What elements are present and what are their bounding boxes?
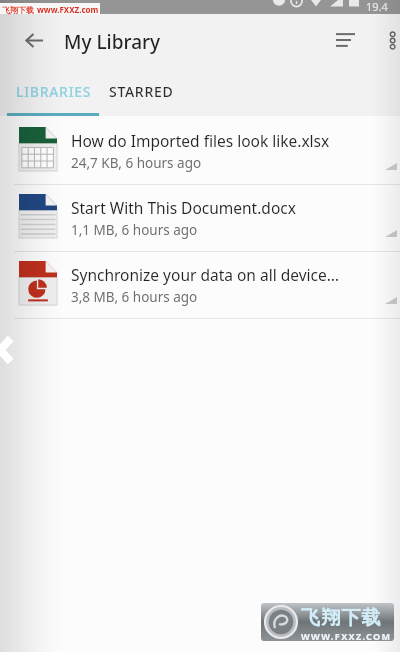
staticText: How do Imported files look like.xlsx <box>71 130 330 151</box>
staticText: www.FXXZ.com <box>37 4 99 15</box>
button[interactable]: Back <box>17 12 51 68</box>
button[interactable]: How do Imported files look like.xlsx <box>0 118 400 185</box>
button[interactable]: Start With This Document.docx <box>0 185 400 252</box>
staticText: 19.4 <box>366 0 388 13</box>
staticText: Start With This Document.docx <box>71 197 296 218</box>
staticText: 飞翔下载 <box>301 606 382 630</box>
staticText: 3,8 MB, 6 hours ago <box>71 288 198 306</box>
button[interactable]: STARRED <box>104 70 178 114</box>
staticText: Synchronize your data on all device… <box>71 264 339 285</box>
button[interactable]: LIBRARIES <box>0 70 107 114</box>
staticText: LIBRARIES <box>16 82 92 101</box>
staticText: 24,7 KB, 6 hours ago <box>71 154 202 172</box>
staticText: STARRED <box>109 82 174 101</box>
button[interactable]: Open navigation drawer <box>0 334 11 366</box>
button[interactable]: More options <box>383 12 400 68</box>
staticText: 飞翔下载 <box>2 5 34 15</box>
staticText: My Library <box>64 29 161 55</box>
button[interactable]: Synchronize your data on all device… <box>0 252 400 319</box>
staticText: 1,1 MB, 6 hours ago <box>71 221 198 239</box>
button[interactable]: Sort <box>329 12 361 68</box>
staticText: WWW.FXXZ.COM <box>301 630 392 641</box>
